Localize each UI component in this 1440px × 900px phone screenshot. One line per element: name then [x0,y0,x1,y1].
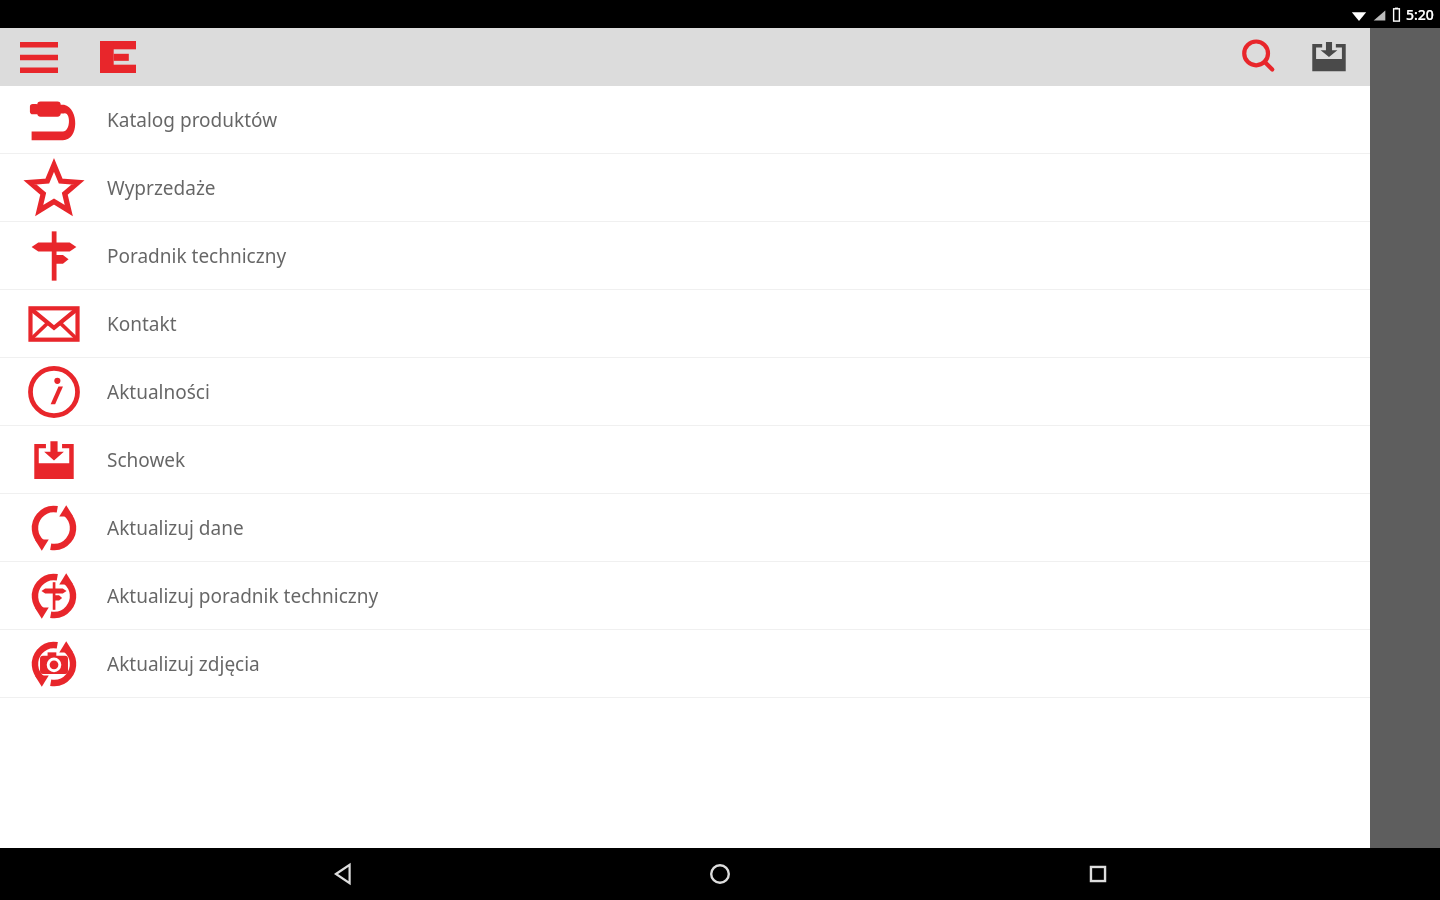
button[interactable]: Kontakt [0,290,1370,357]
button[interactable]: App logo [100,35,150,79]
staticText: 5:20 [1406,5,1434,24]
button[interactable]: Aktualizuj poradnik techniczny [0,562,1370,629]
staticText: Aktualności [107,379,210,405]
button[interactable]: Recent apps [1063,848,1133,900]
button[interactable]: Open navigation menu [10,28,68,86]
button[interactable]: Search [1230,28,1288,86]
button[interactable]: Schowek [0,426,1370,493]
button[interactable]: Poradnik techniczny [0,222,1370,289]
button[interactable]: Aktualizuj zdjęcia [0,630,1370,697]
button[interactable]: Downloads inbox [1300,28,1358,86]
button[interactable]: Wyprzedaże [0,154,1370,221]
staticText: Katalog produktów [107,107,278,133]
staticText: Kontakt [107,311,177,337]
staticText: Poradnik techniczny [107,243,287,269]
staticText: Aktualizuj zdjęcia [107,651,260,677]
staticText: Aktualizuj dane [107,515,244,541]
button[interactable]: Back [308,848,378,900]
staticText: Aktualizuj poradnik techniczny [107,583,379,609]
staticText: Wyprzedaże [107,175,216,201]
staticText: Schowek [107,447,186,473]
button[interactable]: Home [685,848,755,900]
button[interactable]: Aktualizuj dane [0,494,1370,561]
button[interactable]: Aktualności [0,358,1370,425]
button[interactable]: Katalog produktów [0,86,1370,153]
